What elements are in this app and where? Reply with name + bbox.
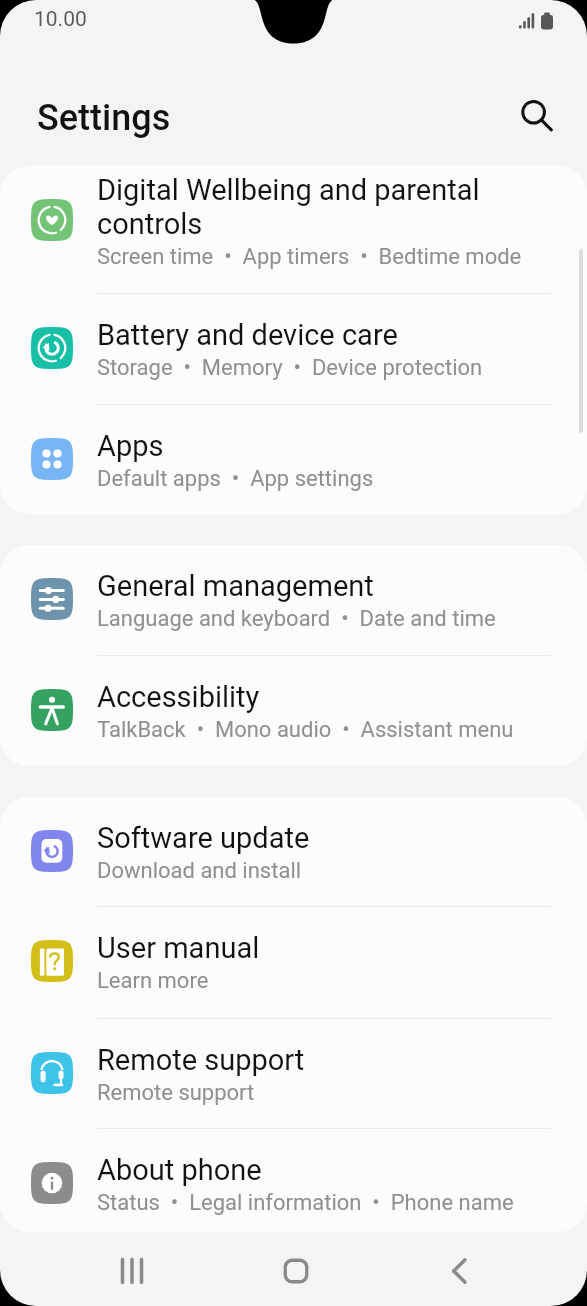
button[interactable]: Search xyxy=(511,90,561,140)
staticText: Apps xyxy=(97,429,164,463)
button[interactable]: General management xyxy=(0,545,587,655)
staticText: TalkBack • Mono audio • Assistant menu xyxy=(97,717,514,743)
staticText: Status • Legal information • Phone name xyxy=(97,1190,514,1216)
button[interactable]: Home xyxy=(257,1234,335,1306)
button[interactable]: Accessibility xyxy=(0,656,587,766)
button[interactable]: Remote support xyxy=(0,1019,587,1128)
staticText: 10.00 xyxy=(34,7,87,32)
button[interactable]: Recent apps xyxy=(93,1234,171,1306)
staticText: General management xyxy=(97,569,374,603)
button[interactable]: About phone xyxy=(0,1129,587,1232)
staticText: Remote support xyxy=(97,1043,305,1077)
staticText: Accessibility xyxy=(97,680,260,714)
staticText: Digital Wellbeing and parental xyxy=(97,173,480,207)
button[interactable]: Software update xyxy=(0,797,587,906)
staticText: Settings xyxy=(37,97,171,139)
staticText: Default apps • App settings xyxy=(97,466,374,492)
button[interactable]: Apps xyxy=(0,405,587,514)
staticText: Software update xyxy=(97,821,310,855)
staticText: controls xyxy=(97,207,203,241)
button[interactable]: Back xyxy=(421,1234,499,1306)
staticText: Battery and device care xyxy=(97,318,398,352)
staticText: Screen time • App timers • Bedtime mode xyxy=(97,244,522,270)
staticText: Learn more xyxy=(97,968,209,994)
staticText: Download and install xyxy=(97,858,302,884)
staticText: About phone xyxy=(97,1153,262,1187)
button[interactable]: User manual xyxy=(0,907,587,1018)
staticText: Remote support xyxy=(97,1080,255,1106)
staticText: Storage • Memory • Device protection xyxy=(97,355,483,381)
staticText: Language and keyboard • Date and time xyxy=(97,606,496,632)
button[interactable]: Digital Wellbeing and parental xyxy=(0,166,587,293)
staticText: User manual xyxy=(97,931,260,965)
button[interactable]: Battery and device care xyxy=(0,294,587,404)
